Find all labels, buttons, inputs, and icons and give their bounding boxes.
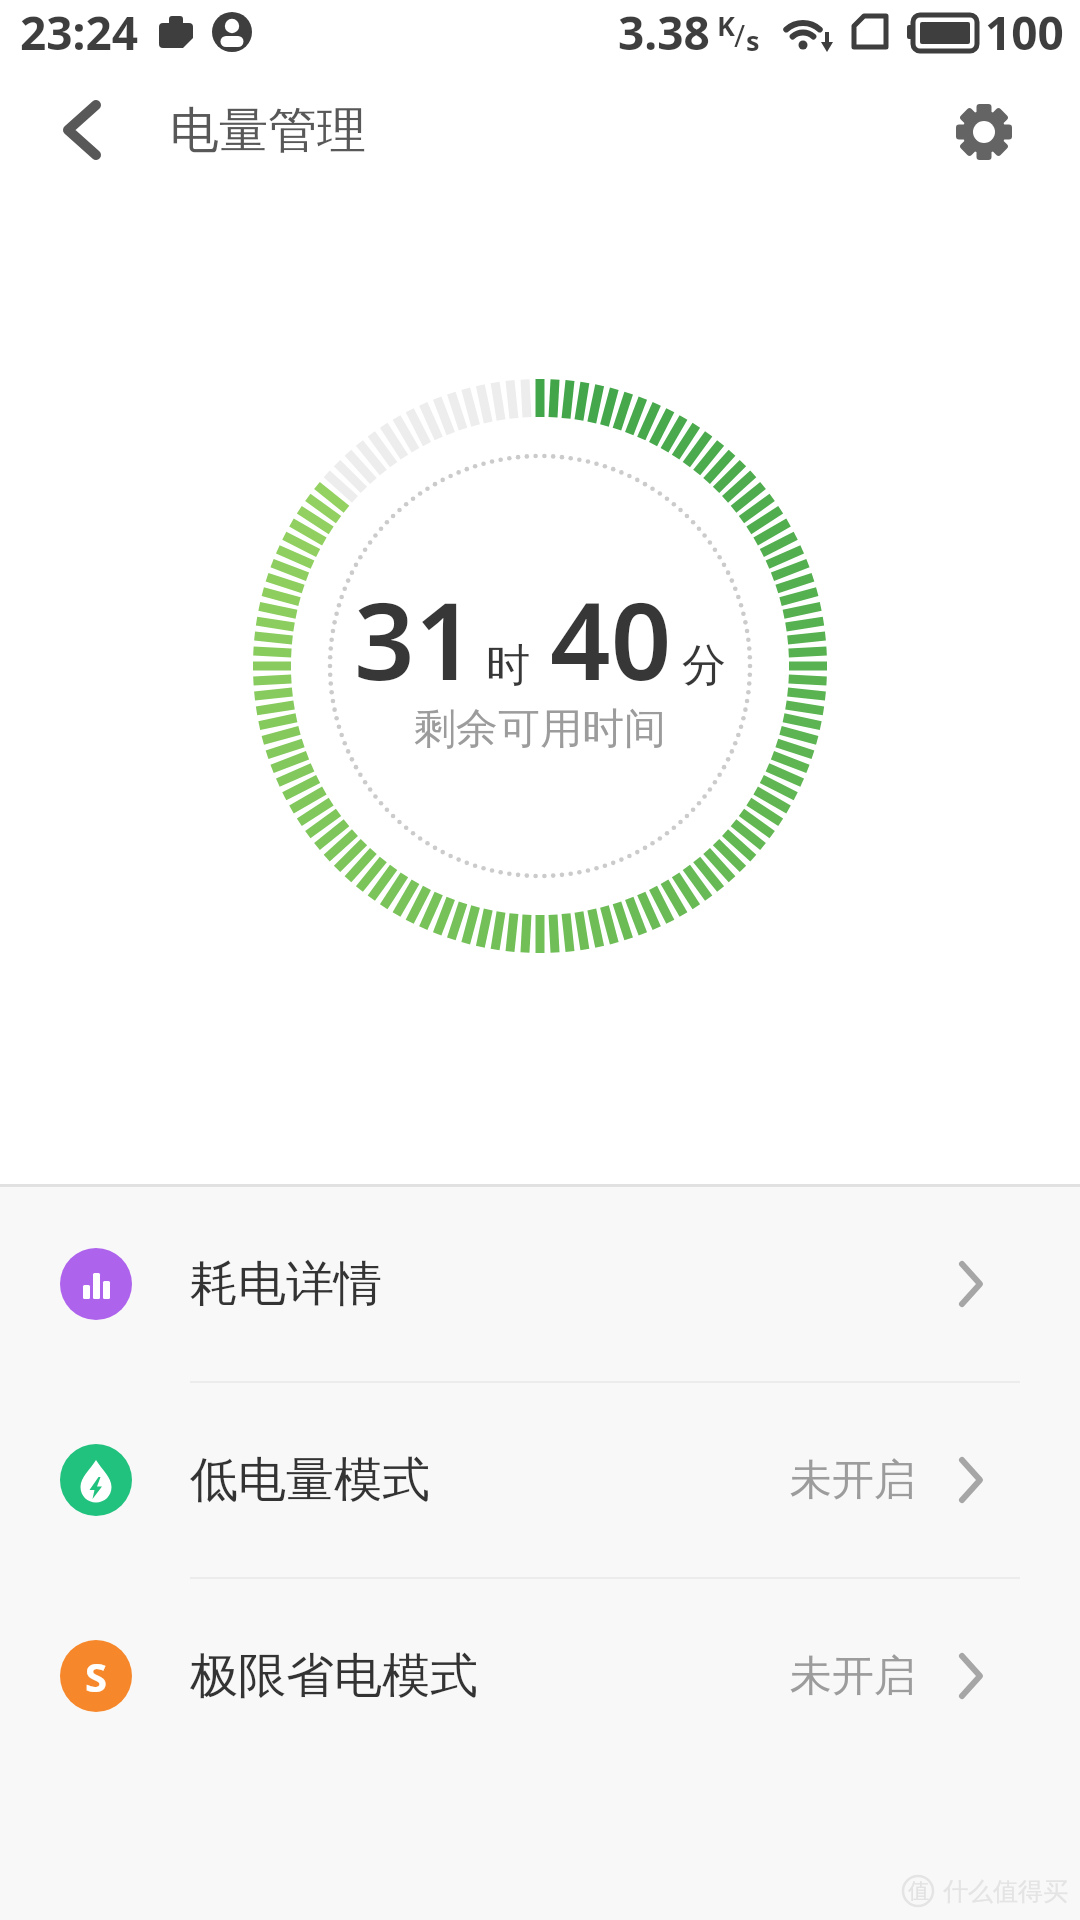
staticText: 23:24	[20, 1, 139, 64]
staticText: S	[85, 1649, 108, 1703]
staticText: 电量管理	[170, 100, 366, 162]
button[interactable]: 耗电详情	[0, 1187, 1080, 1381]
staticText: 未开启	[790, 1650, 916, 1703]
staticText: 极限省电模式	[190, 1646, 478, 1706]
staticText: 低电量模式	[190, 1450, 430, 1510]
staticText: 40	[550, 567, 672, 711]
staticText: 耗电详情	[190, 1254, 382, 1314]
staticText: /	[734, 15, 746, 56]
staticText: 值	[908, 1878, 929, 1904]
staticText: 未开启	[790, 1454, 916, 1507]
staticText: K	[717, 7, 735, 44]
staticText: s	[746, 22, 760, 59]
staticText: 分	[682, 638, 726, 693]
button[interactable]	[948, 96, 1020, 168]
button[interactable]: 低电量模式	[0, 1383, 1080, 1577]
staticText: 100	[985, 1, 1064, 64]
staticText: 时	[486, 638, 530, 693]
staticText: 3.38	[618, 1, 710, 64]
staticText: 31	[354, 567, 476, 711]
staticText: 剩余可用时间	[414, 703, 666, 756]
button[interactable]: S	[0, 1579, 1080, 1773]
staticText: 什么值得买	[943, 1876, 1068, 1907]
button[interactable]	[50, 100, 114, 160]
